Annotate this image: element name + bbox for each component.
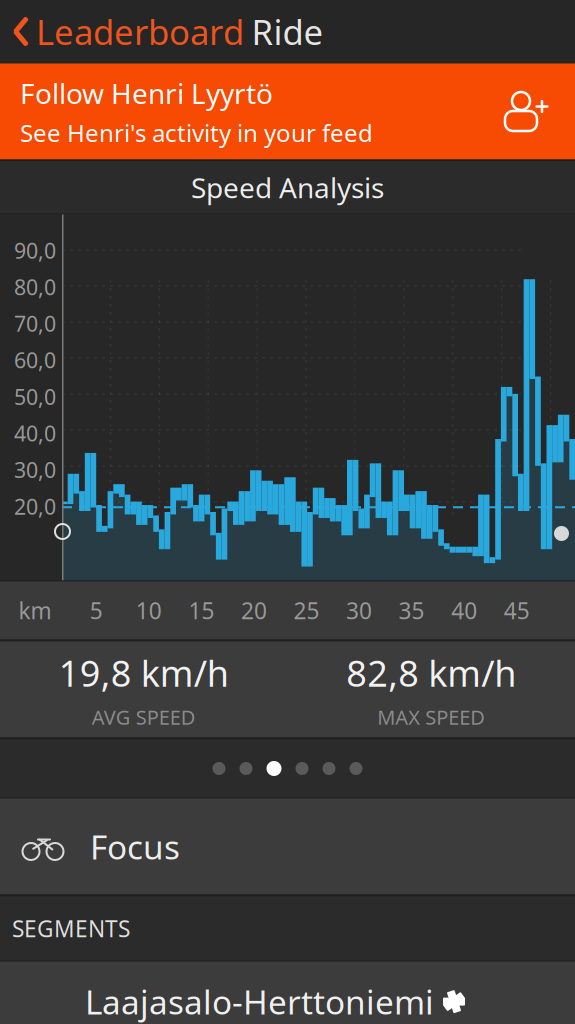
button[interactable]: Focus bbox=[0, 798, 575, 894]
button[interactable]: Laajasalo-Herttoniemi bbox=[0, 961, 575, 1024]
staticText: 60,0 bbox=[14, 346, 56, 374]
staticText: See Henri's activity in your feed bbox=[20, 117, 373, 149]
staticText: 35 bbox=[399, 595, 425, 625]
button[interactable]: Leaderboard bbox=[0, 2, 244, 60]
button[interactable]: Follow Henri Lyyrtö bbox=[0, 63, 575, 159]
staticText: 5 bbox=[90, 595, 103, 625]
staticText: km bbox=[18, 595, 51, 625]
staticText: 40,0 bbox=[14, 419, 56, 447]
staticText: 90,0 bbox=[14, 236, 56, 264]
staticText: Speed Analysis bbox=[191, 169, 384, 206]
staticText: 10 bbox=[136, 595, 162, 625]
staticText: Ride bbox=[251, 8, 323, 54]
staticText: 20,0 bbox=[14, 492, 56, 520]
staticText: Laajasalo-Herttoniemi bbox=[85, 979, 434, 1024]
staticText: 30 bbox=[346, 595, 372, 625]
staticText: 19,8 km/h bbox=[59, 649, 229, 697]
staticText: 70,0 bbox=[14, 309, 56, 338]
staticText: 45 bbox=[504, 595, 530, 625]
staticText: 25 bbox=[293, 595, 319, 625]
staticText: SEGMENTS bbox=[12, 913, 130, 943]
staticText: 80,0 bbox=[14, 273, 56, 301]
staticText: 50,0 bbox=[14, 382, 56, 411]
staticText: 15 bbox=[188, 595, 214, 625]
staticText: MAX SPEED bbox=[377, 704, 485, 730]
staticText: 20 bbox=[241, 595, 267, 625]
staticText: Leaderboard bbox=[36, 8, 244, 54]
staticText: 40 bbox=[451, 595, 477, 625]
staticText: Focus bbox=[90, 824, 180, 869]
staticText: 82,8 km/h bbox=[346, 649, 516, 697]
staticText: 30,0 bbox=[14, 456, 56, 484]
staticText: Follow Henri Lyyrtö bbox=[20, 74, 273, 112]
staticText: AVG SPEED bbox=[92, 704, 196, 730]
